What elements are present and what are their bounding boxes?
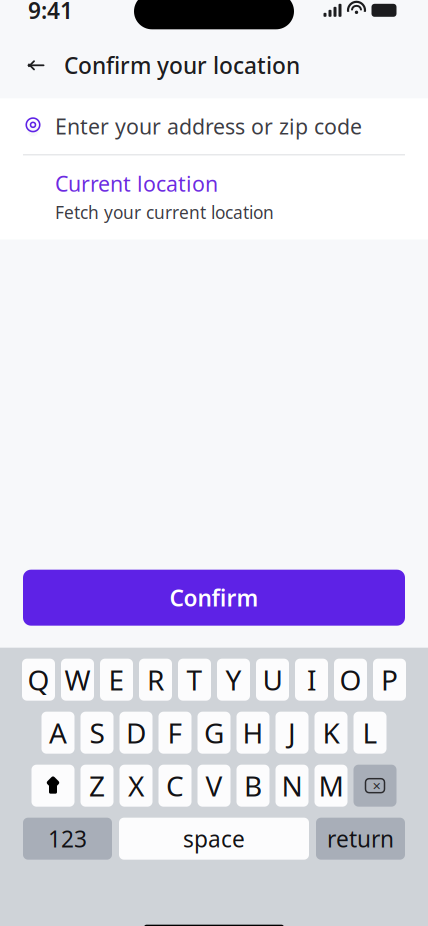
staticText: J: [288, 714, 296, 751]
button[interactable]: Back: [22, 51, 50, 79]
button[interactable]: U: [256, 659, 289, 701]
staticText: space: [183, 824, 245, 854]
staticText: C: [166, 767, 184, 804]
button[interactable]: M: [314, 765, 347, 807]
button[interactable]: 123: [23, 818, 112, 860]
staticText: return: [327, 824, 394, 854]
staticText: G: [204, 714, 224, 751]
button[interactable]: Current location: [0, 155, 428, 240]
staticText: V: [205, 767, 222, 804]
button[interactable]: F: [158, 712, 191, 754]
button[interactable]: S: [80, 712, 113, 754]
staticText: O: [339, 661, 361, 698]
staticText: Z: [89, 767, 105, 804]
button[interactable]: space: [119, 818, 309, 860]
button[interactable]: Q: [22, 659, 55, 701]
staticText: N: [281, 767, 302, 804]
button[interactable]: H: [236, 712, 269, 754]
button[interactable]: C: [158, 765, 191, 807]
staticText: W: [64, 661, 90, 698]
button[interactable]: K: [314, 712, 347, 754]
staticText: 123: [48, 824, 87, 854]
button[interactable]: I: [295, 659, 328, 701]
staticText: D: [126, 714, 146, 751]
button[interactable]: E: [100, 659, 133, 701]
staticText: P: [381, 661, 398, 698]
button[interactable]: D: [119, 712, 152, 754]
button[interactable]: W: [61, 659, 94, 701]
staticText: T: [186, 661, 202, 698]
staticText: L: [362, 714, 377, 751]
button[interactable]: V: [197, 765, 230, 807]
button[interactable]: R: [139, 659, 172, 701]
staticText: Enter your address or zip code: [55, 112, 362, 140]
staticText: K: [322, 714, 339, 751]
staticText: Confirm: [169, 583, 258, 613]
button[interactable]: Y: [217, 659, 250, 701]
staticText: F: [167, 714, 182, 751]
staticText: Y: [225, 661, 241, 698]
staticText: B: [244, 767, 262, 804]
button[interactable]: G: [197, 712, 230, 754]
button[interactable]: J: [275, 712, 308, 754]
staticText: R: [147, 661, 164, 698]
button[interactable]: Z: [80, 765, 113, 807]
button[interactable]: L: [353, 712, 386, 754]
button[interactable]: X: [119, 765, 152, 807]
button[interactable]: T: [178, 659, 211, 701]
button[interactable]: O: [334, 659, 367, 701]
staticText: Q: [27, 661, 49, 698]
staticText: Fetch your current location: [55, 201, 274, 224]
button[interactable]: Confirm: [23, 570, 405, 626]
staticText: E: [108, 661, 124, 698]
staticText: M: [318, 767, 343, 804]
button[interactable]: A: [41, 712, 74, 754]
staticText: 9:41: [28, 0, 73, 25]
staticText: S: [89, 714, 104, 751]
staticText: Current location: [55, 169, 218, 198]
staticText: I: [307, 661, 316, 698]
staticText: X: [128, 767, 144, 804]
button[interactable]: P: [373, 659, 406, 701]
staticText: ×: [372, 776, 380, 795]
button[interactable]: Enter your address or zip code: [0, 98, 428, 154]
staticText: A: [49, 714, 67, 751]
button[interactable]: Delete: [353, 765, 396, 807]
button[interactable]: N: [275, 765, 308, 807]
staticText: U: [262, 661, 282, 698]
staticText: H: [242, 714, 263, 751]
staticText: Confirm your location: [64, 50, 300, 80]
button[interactable]: return: [316, 818, 405, 860]
button[interactable]: Shift: [31, 765, 74, 807]
button[interactable]: B: [236, 765, 269, 807]
